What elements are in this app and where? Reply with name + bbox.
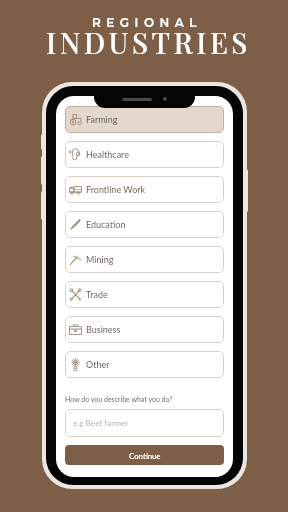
button[interactable]: Continue xyxy=(65,445,224,465)
staticText: Healthcare xyxy=(86,149,129,160)
staticText: Mining xyxy=(86,254,114,265)
button[interactable]: Other xyxy=(65,351,224,378)
button[interactable]: Farming xyxy=(65,106,224,133)
staticText: Education xyxy=(86,219,126,230)
button[interactable]: Frontline Work xyxy=(65,176,224,203)
button[interactable]: Education xyxy=(65,211,224,238)
staticText: Frontline Work xyxy=(86,184,146,195)
staticText: REGIONAL xyxy=(92,15,202,30)
staticText: Trade xyxy=(86,289,108,300)
staticText: Other xyxy=(86,359,110,370)
button[interactable]: Mining xyxy=(65,246,224,273)
staticText: Continue xyxy=(129,451,161,460)
button[interactable]: Trade xyxy=(65,281,224,308)
staticText: Business xyxy=(86,324,121,335)
button[interactable]: Business xyxy=(65,316,224,343)
button[interactable]: Healthcare xyxy=(65,141,224,168)
staticText: How do you describe what you do? xyxy=(65,395,173,403)
staticText: INDUSTRIES xyxy=(46,23,251,62)
button[interactable]: e.g Beef farmer xyxy=(65,409,224,437)
staticText: Farming xyxy=(86,114,118,125)
staticText: e.g Beef farmer xyxy=(73,418,129,428)
